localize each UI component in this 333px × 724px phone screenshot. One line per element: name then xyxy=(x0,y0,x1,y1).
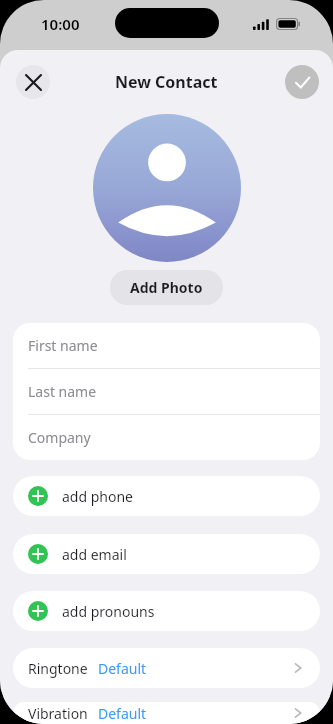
staticText: add email xyxy=(62,545,127,564)
staticText: First name xyxy=(28,336,98,355)
button[interactable]: Company xyxy=(13,415,320,460)
staticText: 10:00 xyxy=(41,14,80,34)
button[interactable]: Vibration xyxy=(13,702,320,724)
button[interactable]: add phone xyxy=(13,476,320,516)
staticText: New Contact xyxy=(115,71,218,93)
staticText: Last name xyxy=(28,382,97,401)
staticText: add phone xyxy=(62,487,133,506)
button[interactable]: Add Photo xyxy=(110,270,223,305)
button[interactable]: Ringtone xyxy=(13,648,320,688)
button[interactable]: add pronouns xyxy=(13,591,320,631)
button[interactable]: Last name xyxy=(13,369,320,415)
staticText: Vibration xyxy=(28,704,88,723)
button[interactable]: Save contact xyxy=(285,65,319,99)
button[interactable]: First name xyxy=(13,323,320,369)
button[interactable]: add email xyxy=(13,534,320,574)
staticText: add pronouns xyxy=(62,602,155,621)
staticText: Ringtone xyxy=(28,659,88,678)
staticText: Default xyxy=(98,704,147,723)
staticText: Add Photo xyxy=(130,278,203,297)
button[interactable]: Close xyxy=(16,65,50,99)
staticText: Company xyxy=(28,428,91,447)
staticText: Default xyxy=(98,659,147,678)
